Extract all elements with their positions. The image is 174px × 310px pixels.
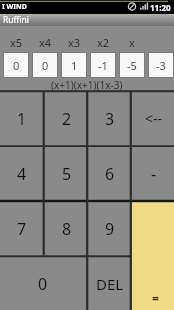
staticText: DEL — [96, 274, 124, 294]
button[interactable]: 0 — [0, 257, 86, 310]
button[interactable]: 1 — [61, 52, 87, 78]
staticText: 8 — [62, 218, 72, 240]
button[interactable]: 5 — [45, 147, 88, 200]
button[interactable]: 7 — [0, 202, 43, 255]
staticText: = — [152, 290, 159, 306]
staticText: 9 — [105, 218, 115, 240]
staticText: x2 — [97, 35, 110, 48]
staticText: x5 — [10, 35, 23, 48]
staticText: 1 — [17, 108, 27, 130]
staticText: 7 — [17, 218, 27, 240]
button[interactable]: 1 — [0, 92, 43, 145]
staticText: <-- — [145, 109, 163, 128]
staticText: 11:20 — [150, 2, 171, 13]
staticText: -5 — [127, 58, 137, 73]
button[interactable]: = — [132, 202, 174, 310]
staticText: Ruffini — [3, 14, 30, 26]
button[interactable]: -1 — [90, 52, 116, 78]
button[interactable]: <-- — [132, 92, 174, 145]
staticText: I WIND — [2, 2, 27, 12]
staticText: 5 — [62, 163, 72, 185]
staticText: (x+1)(x+1)(1x-3) — [51, 78, 123, 91]
button[interactable]: 2 — [45, 92, 88, 145]
staticText: x3 — [68, 35, 81, 48]
button[interactable]: 9 — [88, 202, 131, 255]
staticText: 3 — [105, 108, 115, 130]
staticText: 1 — [71, 58, 78, 73]
button[interactable]: DEL — [88, 257, 131, 310]
staticText: x — [129, 35, 135, 48]
button[interactable]: 4 — [0, 147, 43, 200]
staticText: -1 — [98, 58, 108, 73]
staticText: 2 — [62, 108, 72, 130]
button[interactable]: - — [132, 147, 174, 200]
staticText: 0 — [13, 58, 20, 73]
staticText: 0 — [38, 273, 48, 295]
button[interactable]: 8 — [45, 202, 88, 255]
staticText: - — [151, 163, 157, 185]
button[interactable]: 3 — [88, 92, 131, 145]
staticText: x4 — [39, 35, 52, 48]
staticText: 4 — [17, 163, 27, 185]
button[interactable]: -5 — [119, 52, 145, 78]
button[interactable]: 0 — [3, 52, 29, 78]
staticText: -3 — [156, 58, 166, 73]
button[interactable]: 6 — [88, 147, 131, 200]
staticText: 0 — [42, 58, 49, 73]
button[interactable]: 0 — [32, 52, 58, 78]
button[interactable]: -3 — [148, 52, 174, 78]
staticText: 6 — [105, 163, 115, 185]
